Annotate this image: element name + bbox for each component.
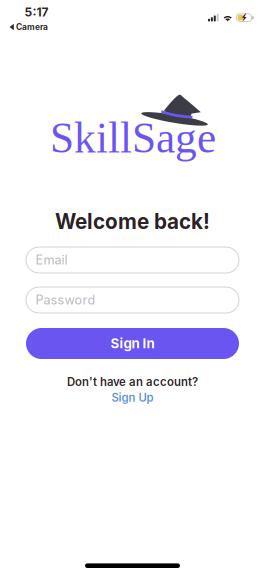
staticText: Email xyxy=(35,252,67,268)
staticText: Welcome back! xyxy=(55,209,210,234)
button[interactable]: Sign Up xyxy=(111,391,153,404)
staticText: Sign Up xyxy=(111,391,153,404)
button[interactable]: Sign In xyxy=(26,328,239,359)
staticText: Camera xyxy=(16,22,48,32)
staticText: 5:17 xyxy=(25,5,49,19)
staticText: SkillSage xyxy=(50,114,216,162)
staticText: Password xyxy=(35,292,95,308)
staticText: Don't have an account? xyxy=(67,375,198,389)
staticText: Sign In xyxy=(110,335,154,351)
